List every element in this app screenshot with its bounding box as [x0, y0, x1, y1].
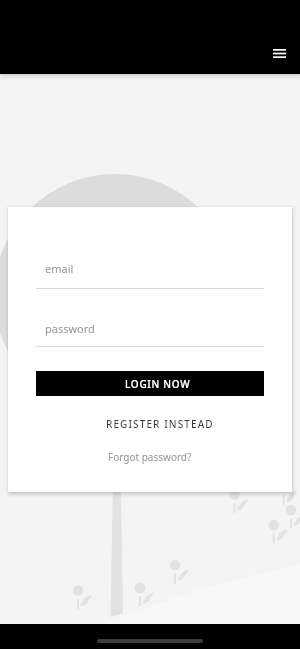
button[interactable]: REGISTER INSTEAD [38, 412, 266, 436]
staticText: Forgot password? [108, 450, 192, 464]
button[interactable]: Home [97, 639, 203, 643]
button[interactable]: LOGIN NOW [36, 371, 264, 396]
button[interactable]: password [36, 313, 264, 347]
button[interactable]: email [36, 255, 264, 289]
button[interactable]: Forgot password? [36, 446, 264, 468]
staticText: password [45, 321, 95, 336]
staticText: LOGIN NOW [125, 377, 191, 391]
staticText: REGISTER INSTEAD [106, 417, 214, 431]
button[interactable]: Menu [265, 39, 294, 68]
staticText: email [45, 261, 74, 276]
